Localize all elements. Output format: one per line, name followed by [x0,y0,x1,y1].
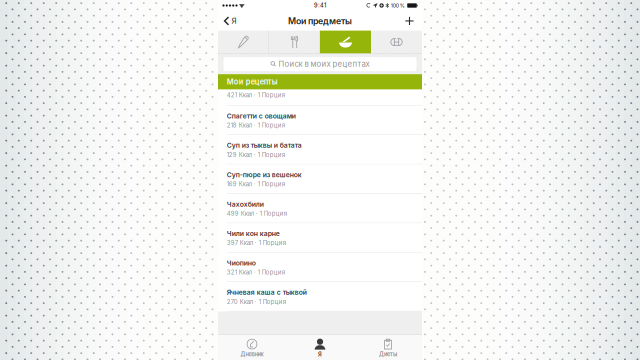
staticText: 499 Ккал · 1 Порция [227,210,287,217]
button[interactable]: Диеты [354,335,422,360]
staticText: Суп из тыквы и батата [227,141,302,149]
button[interactable]: Чахохбили [218,194,422,223]
button[interactable]: Products [218,31,269,54]
button[interactable]: Ячневая каша с тыквой [218,282,422,311]
staticText: Поиск в моих рецептах [278,59,369,69]
staticText: 218 Ккал · 1 Порция [227,122,285,129]
staticText: 9:41 [314,2,326,9]
button[interactable]: Search my recipes [223,57,416,71]
staticText: Чахохбили [227,200,264,208]
staticText: 321 Ккал · 1 Порция [227,269,285,276]
staticText: 397 Ккал · 1 Порция [227,239,286,247]
staticText: Диеты [379,351,397,358]
staticText: 169 Ккал · 1 Порция [227,180,285,188]
staticText: 270 Ккал · 1 Порция [227,298,286,305]
staticText: Мои предметы [288,16,352,26]
button[interactable]: Спагетти с овощами [218,106,422,135]
button[interactable]: Meals [269,31,320,54]
button[interactable]: Я [286,335,354,360]
staticText: 421 Ккал · 1 Порция [227,91,285,99]
staticText: 100 % [391,2,405,9]
staticText: Чили кон карне [227,229,280,238]
button[interactable]: Дневник [218,335,286,360]
button[interactable]: Add [400,11,422,31]
button[interactable]: Recipes [320,31,371,54]
button[interactable]: Чиопино [218,253,422,282]
button[interactable]: Суп из тыквы и батата [218,135,422,164]
staticText: Суп-пюре из вешенок [227,171,302,179]
staticText: Дневник [240,351,263,357]
button[interactable]: Чили кон карне [218,223,422,253]
staticText: Мои рецепты [227,77,278,86]
button[interactable]: Back [218,11,244,31]
staticText: Я [318,351,322,358]
staticText: Я [232,16,237,26]
staticText: Спагетти с овощами [227,112,296,120]
staticText: Ячневая каша с тыквой [227,288,307,296]
staticText: 129 Ккал · 1 Порция [227,151,285,158]
staticText: Чиопино [227,259,256,267]
button[interactable]: Exercise [371,31,422,54]
button[interactable]: Суп-пюре из вешенок [218,164,422,194]
